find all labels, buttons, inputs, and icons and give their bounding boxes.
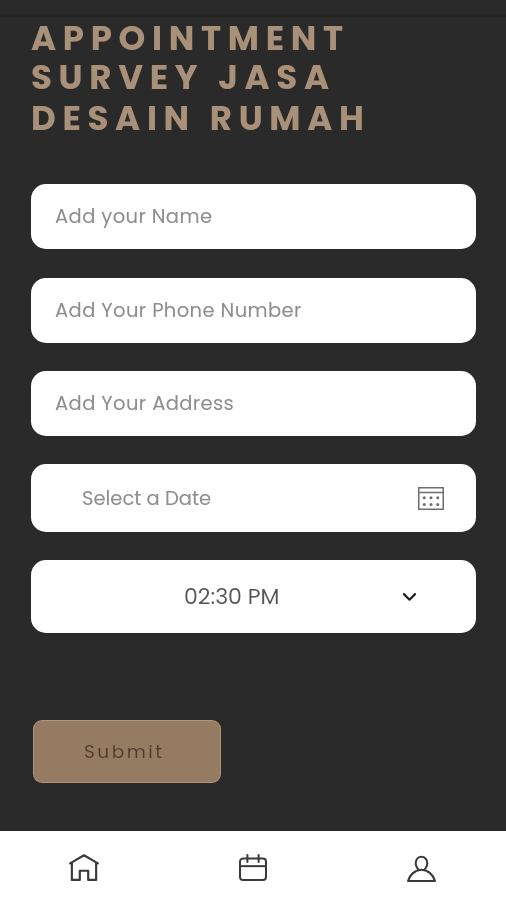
button[interactable]: Profile (337, 831, 506, 900)
staticText: Add Your Address (55, 390, 235, 417)
button[interactable]: 02:30 PM (31, 560, 476, 633)
button[interactable]: Select a Date (31, 464, 476, 532)
staticText: Select a Date (82, 485, 212, 512)
button[interactable]: Add your Name (31, 184, 476, 249)
button[interactable]: Submit (34, 721, 220, 782)
button[interactable]: Add Your Phone Number (31, 278, 476, 343)
staticText: SURVEY JASA (31, 53, 336, 101)
staticText: DESAIN RUMAH (31, 94, 371, 142)
button[interactable]: Calendar (168, 831, 337, 900)
staticText: 02:30 PM (184, 581, 280, 612)
button[interactable]: Home (0, 831, 168, 900)
button[interactable]: Add Your Address (31, 371, 476, 436)
staticText: APPOINTMENT (31, 14, 350, 62)
staticText: Add Your Phone Number (55, 297, 302, 324)
staticText: Add your Name (55, 203, 213, 230)
staticText: Submit (84, 739, 165, 765)
